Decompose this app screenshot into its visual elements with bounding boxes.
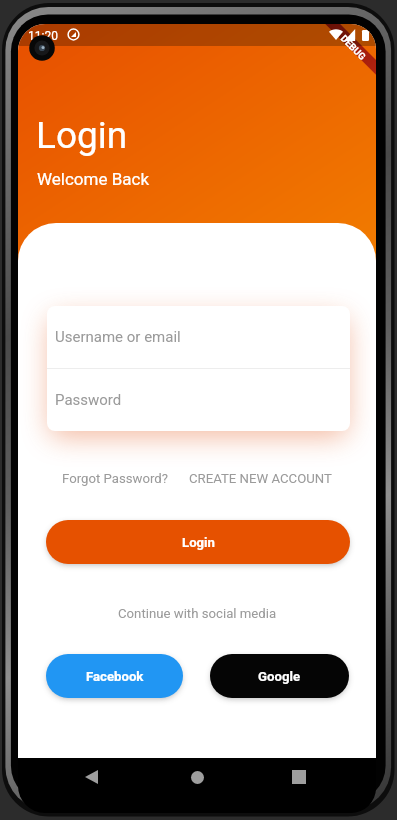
button[interactable]: Forgot Password? bbox=[58, 466, 173, 491]
staticText: Forgot Password? bbox=[62, 471, 169, 486]
staticText: Login bbox=[182, 535, 215, 550]
button[interactable]: CREATE NEW ACCOUNT bbox=[185, 466, 336, 491]
staticText: DEBUG bbox=[339, 33, 368, 62]
staticText: Username or email bbox=[55, 328, 181, 346]
button[interactable]: Google bbox=[210, 654, 349, 698]
button[interactable]: Password bbox=[47, 369, 350, 431]
button[interactable]: Username or email bbox=[47, 306, 350, 368]
staticText: Google bbox=[258, 669, 301, 684]
button[interactable]: Facebook bbox=[46, 654, 183, 698]
staticText: Continue with social media bbox=[118, 606, 277, 621]
staticText: Login bbox=[36, 114, 128, 157]
button[interactable]: Recent apps bbox=[275, 758, 323, 796]
button[interactable]: Login bbox=[46, 520, 350, 564]
staticText: CREATE NEW ACCOUNT bbox=[189, 471, 332, 486]
staticText: Facebook bbox=[86, 669, 144, 684]
button[interactable]: Back bbox=[67, 758, 115, 796]
staticText: 11:20 bbox=[28, 29, 58, 43]
button[interactable]: Home bbox=[173, 758, 221, 796]
staticText: Welcome Back bbox=[37, 169, 150, 189]
staticText: Password bbox=[55, 391, 122, 409]
